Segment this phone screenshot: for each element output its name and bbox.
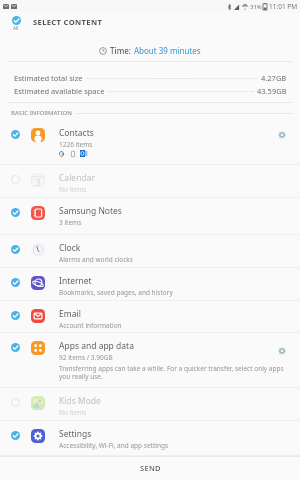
staticText: 92 items / 3.90GB — [59, 353, 113, 362]
staticText: Transferring apps can take a while. For … — [59, 364, 284, 381]
staticText: 43.59GB — [257, 86, 287, 96]
staticText: Estimated total size — [14, 73, 83, 83]
staticText: No items — [59, 408, 87, 417]
button[interactable]: SEND — [0, 456, 300, 480]
button[interactable]: Select all — [6, 12, 26, 36]
staticText: 4.27GB — [261, 73, 287, 83]
staticText: SEND — [140, 463, 161, 473]
staticText: Account information — [59, 321, 122, 330]
staticText: SELECT CONTENT — [33, 17, 103, 27]
staticText: Contacts — [59, 127, 94, 139]
staticText: Samsung Notes — [59, 205, 122, 217]
button[interactable]: Email — [0, 301, 300, 333]
button[interactable]: Samsung Notes — [0, 198, 300, 235]
staticText: Bookmarks, saved pages, and history — [59, 288, 173, 297]
staticText: Internet — [59, 275, 92, 287]
staticText: About 39 minutes — [134, 45, 201, 56]
staticText: Calendar — [59, 172, 95, 184]
button[interactable]: Contacts — [0, 120, 300, 165]
button[interactable]: Clock — [0, 235, 300, 268]
staticText: All — [13, 25, 19, 31]
button[interactable]: Kids Mode — [0, 388, 300, 421]
button[interactable]: Contacts settings — [274, 127, 290, 143]
button[interactable]: Apps and app data — [0, 333, 300, 388]
staticText: BASIC INFORMATION — [11, 109, 72, 117]
staticText: No items — [59, 185, 87, 194]
staticText: Email — [59, 308, 81, 320]
staticText: Kids Mode — [59, 395, 101, 407]
staticText: Apps and app data — [59, 340, 134, 352]
staticText: Estimated available space — [14, 86, 105, 96]
staticText: 3 — [36, 177, 41, 188]
staticText: Clock — [59, 242, 81, 254]
button[interactable]: Apps and app data settings — [274, 343, 290, 359]
staticText: Accessibility, Wi-Fi, and app settings — [59, 441, 169, 450]
staticText: 11:01 PM — [269, 2, 298, 11]
staticText: 1226 items — [59, 140, 93, 149]
staticText: Settings — [59, 428, 92, 440]
staticText: 3 items — [59, 218, 82, 227]
button[interactable]: 3 — [0, 165, 300, 198]
staticText: Alarms and world clocks — [59, 255, 133, 264]
staticText: 31% — [250, 3, 262, 11]
staticText: Time: — [110, 45, 134, 56]
button[interactable]: Settings — [0, 421, 300, 456]
button[interactable]: Internet — [0, 268, 300, 301]
